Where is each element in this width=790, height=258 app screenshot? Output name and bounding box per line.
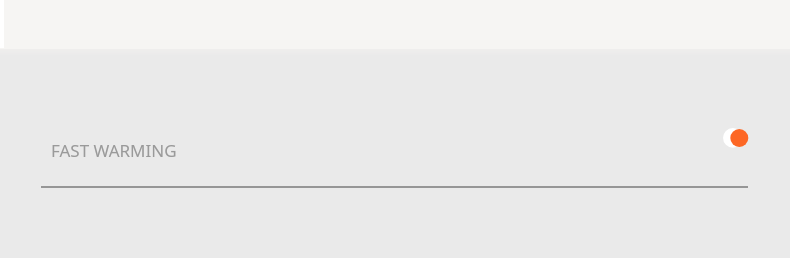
- button[interactable]: FAST WARMING: [0, 118, 790, 158]
- button[interactable]: Fast warming switch, on: [723, 128, 748, 148]
- staticText: FAST WARMING: [51, 139, 177, 162]
